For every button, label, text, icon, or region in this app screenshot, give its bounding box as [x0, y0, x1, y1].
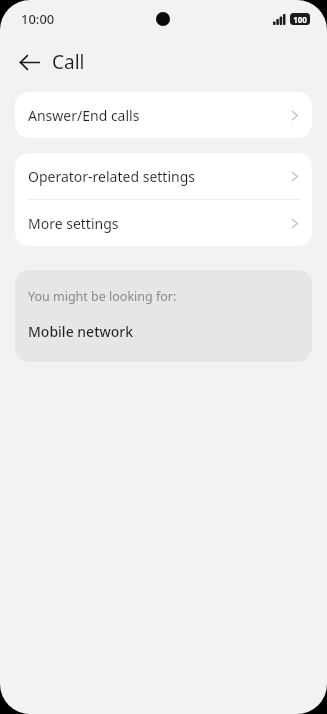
staticText: Answer/End calls	[28, 106, 290, 125]
button[interactable]: Answer/End calls	[15, 92, 312, 138]
staticText: 10:00	[21, 10, 55, 28]
staticText: Operator-related settings	[28, 167, 290, 186]
staticText: Call	[52, 49, 85, 75]
staticText: Mobile network	[28, 322, 134, 341]
staticText: More settings	[28, 214, 290, 233]
staticText: 100	[293, 14, 307, 25]
staticText: You might be looking for:	[28, 288, 177, 305]
button[interactable]: Operator-related settings	[15, 153, 312, 199]
button[interactable]: More settings	[15, 200, 312, 246]
button[interactable]: You might be looking for:	[15, 270, 312, 362]
button[interactable]: Back	[16, 49, 42, 75]
